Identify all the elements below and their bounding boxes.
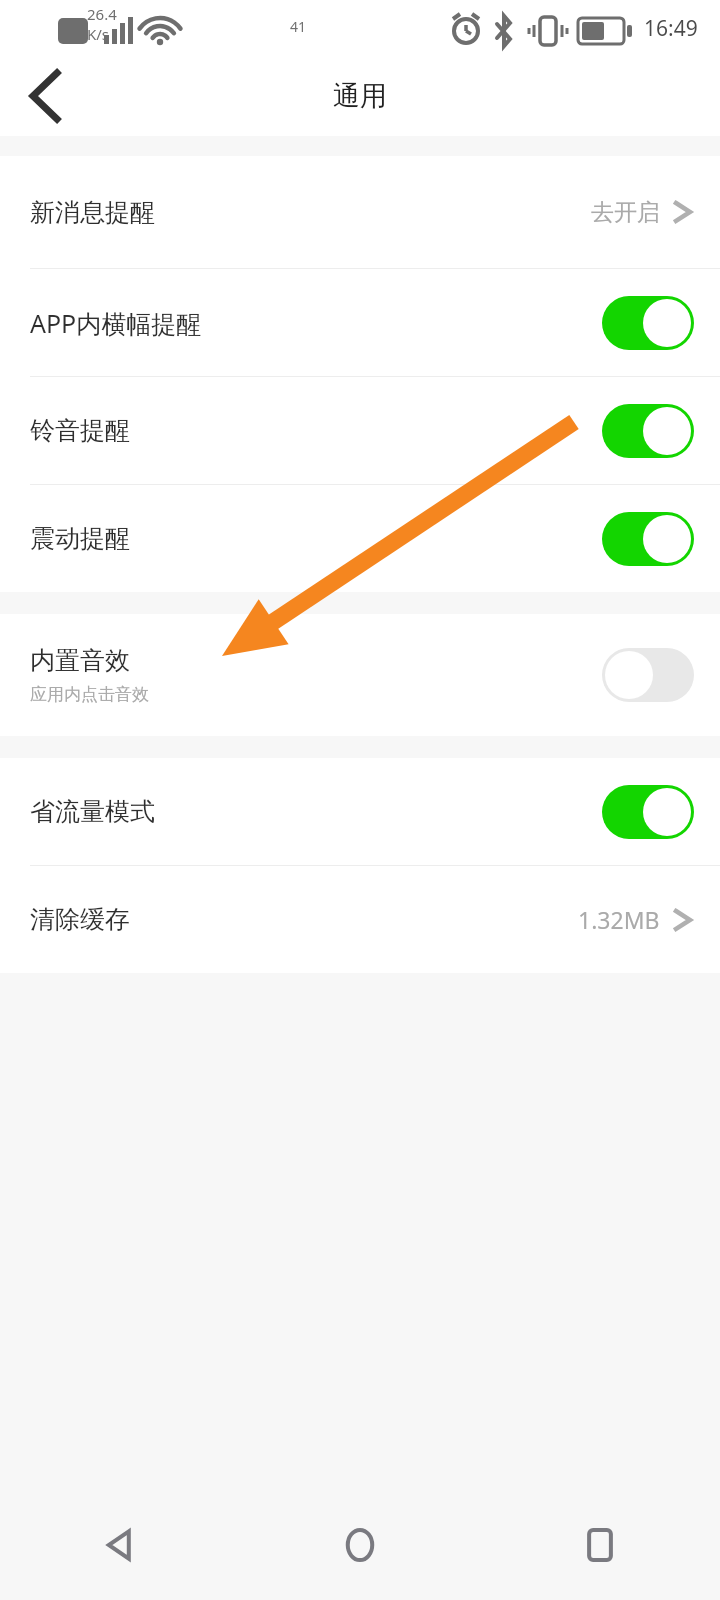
staticText: 26.4 bbox=[87, 4, 117, 24]
staticText: 清除缓存 bbox=[30, 904, 130, 935]
button[interactable]: 铃音提醒 bbox=[0, 377, 720, 484]
staticText: 新消息提醒 bbox=[30, 197, 155, 228]
staticText: 去开启 bbox=[591, 198, 660, 227]
staticText: 省流量模式 bbox=[30, 796, 155, 827]
staticText: 41 bbox=[290, 17, 307, 36]
button[interactable]: Recents bbox=[480, 1490, 720, 1600]
button[interactable]: Toggle on bbox=[602, 296, 694, 350]
staticText: APP内横幅提醒 bbox=[30, 306, 202, 340]
staticText: 1.32MB bbox=[578, 904, 660, 935]
button[interactable]: Home bbox=[240, 1490, 480, 1600]
button[interactable]: 新消息提醒 bbox=[0, 156, 720, 268]
button[interactable]: 省流量模式 bbox=[0, 758, 720, 865]
staticText: 通用 bbox=[333, 79, 387, 113]
staticText: 应用内点击音效 bbox=[30, 684, 149, 705]
button[interactable]: Toggle off bbox=[602, 648, 694, 702]
staticText: K/s bbox=[87, 24, 110, 44]
staticText: 铃音提醒 bbox=[30, 415, 130, 446]
staticText: 震动提醒 bbox=[30, 523, 130, 554]
button[interactable]: Toggle on bbox=[602, 512, 694, 566]
button[interactable]: 震动提醒 bbox=[0, 485, 720, 592]
button[interactable]: Toggle on bbox=[602, 785, 694, 839]
button[interactable]: Back bbox=[10, 64, 74, 128]
staticText: 16:49 bbox=[644, 14, 698, 43]
button[interactable]: APP内横幅提醒 bbox=[0, 269, 720, 376]
button[interactable]: 内置音效 bbox=[0, 614, 720, 736]
button[interactable]: 清除缓存 bbox=[0, 866, 720, 973]
staticText: 内置音效 bbox=[30, 645, 130, 676]
button[interactable]: Back bbox=[0, 1490, 240, 1600]
button[interactable]: Toggle on bbox=[602, 404, 694, 458]
